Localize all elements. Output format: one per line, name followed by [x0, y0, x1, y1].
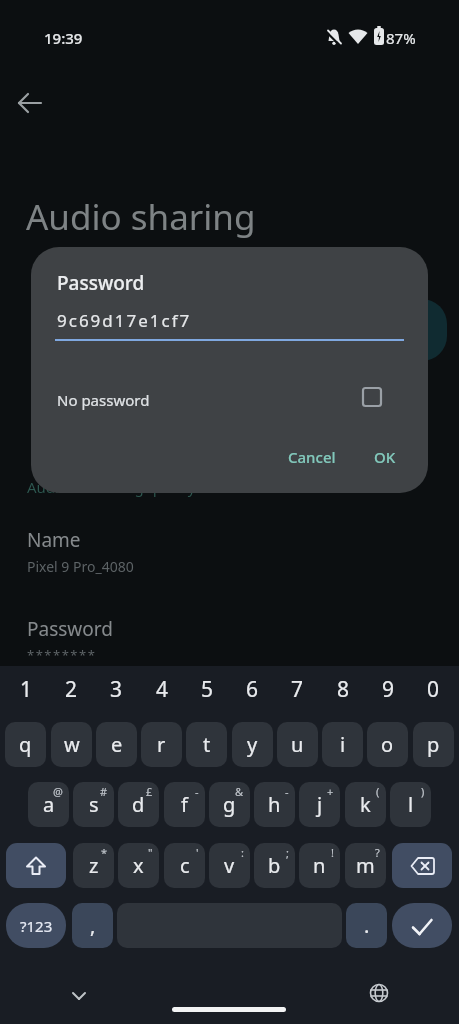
- staticText: +: [327, 784, 334, 799]
- staticText: k: [360, 791, 371, 818]
- button[interactable]: OK: [363, 441, 407, 473]
- button[interactable]: 5: [188, 672, 226, 706]
- button[interactable]: s: [73, 782, 114, 827]
- button[interactable]: g: [209, 782, 250, 827]
- staticText: 3: [110, 675, 123, 704]
- staticText: e: [111, 731, 123, 758]
- button[interactable]: .: [346, 903, 387, 948]
- staticText: Cancel: [288, 447, 336, 467]
- button[interactable]: o: [367, 722, 408, 767]
- staticText: h: [268, 791, 281, 818]
- staticText: Name: [27, 527, 81, 553]
- button[interactable]: 3: [97, 672, 135, 706]
- button[interactable]: p: [413, 722, 454, 767]
- staticText: 87%: [386, 28, 416, 48]
- staticText: o: [381, 731, 394, 758]
- button[interactable]: 4: [143, 672, 181, 706]
- staticText: 8: [337, 675, 350, 704]
- button[interactable]: 1: [7, 672, 45, 706]
- button[interactable]: [392, 903, 452, 948]
- button[interactable]: Cancel: [272, 441, 352, 473]
- button[interactable]: a: [28, 782, 69, 827]
- button[interactable]: v: [209, 843, 250, 888]
- button[interactable]: m: [345, 843, 386, 888]
- button[interactable]: x: [118, 843, 159, 888]
- button[interactable]: i: [322, 722, 363, 767]
- staticText: m: [356, 852, 375, 879]
- button[interactable]: 7: [278, 672, 316, 706]
- staticText: n: [313, 852, 326, 879]
- button[interactable]: 2: [52, 672, 90, 706]
- staticText: Pixel 9 Pro_4080: [27, 557, 134, 576]
- button[interactable]: r: [141, 722, 182, 767]
- button[interactable]: [364, 978, 394, 1008]
- button[interactable]: [64, 980, 94, 1010]
- button[interactable]: z: [73, 843, 114, 888]
- staticText: 5: [201, 675, 214, 704]
- button[interactable]: d: [118, 782, 159, 827]
- staticText: Audio streaming quality: [27, 477, 196, 497]
- staticText: c: [180, 852, 190, 879]
- staticText: No password: [57, 390, 150, 410]
- staticText: g: [223, 791, 236, 818]
- staticText: #: [100, 784, 108, 799]
- staticText: l: [408, 791, 414, 818]
- staticText: r: [157, 731, 166, 758]
- staticText: p: [427, 731, 440, 758]
- staticText: w: [64, 731, 80, 758]
- staticText: 2: [65, 675, 78, 704]
- staticText: q: [19, 731, 32, 758]
- staticText: j: [317, 791, 323, 818]
- button[interactable]: e: [96, 722, 137, 767]
- button[interactable]: h: [254, 782, 295, 827]
- staticText: ;: [286, 845, 289, 860]
- button[interactable]: y: [232, 722, 273, 767]
- button[interactable]: c: [164, 843, 205, 888]
- staticText: 4: [156, 675, 169, 704]
- staticText: i: [340, 731, 346, 758]
- staticText: 6: [246, 675, 259, 704]
- staticText: -: [195, 784, 199, 799]
- staticText: t: [203, 731, 211, 758]
- button[interactable]: b: [254, 843, 295, 888]
- staticText: *: [101, 845, 108, 860]
- staticText: f: [181, 791, 188, 818]
- staticText: ?123: [20, 916, 53, 936]
- button[interactable]: n: [299, 843, 340, 888]
- button[interactable]: ,: [72, 903, 113, 948]
- staticText: 1: [20, 675, 33, 704]
- staticText: &: [235, 784, 244, 799]
- staticText: ,: [90, 912, 96, 939]
- staticText: ): [421, 784, 425, 799]
- staticText: .: [364, 912, 370, 939]
- button[interactable]: [392, 843, 452, 888]
- button[interactable]: f: [164, 782, 205, 827]
- button[interactable]: [6, 843, 66, 888]
- staticText: s: [89, 791, 99, 818]
- staticText: a: [43, 791, 55, 818]
- button[interactable]: 0: [414, 672, 452, 706]
- button[interactable]: 9: [369, 672, 407, 706]
- staticText: £: [146, 784, 153, 799]
- button[interactable]: q: [5, 722, 46, 767]
- button[interactable]: [359, 384, 385, 410]
- staticText: x: [133, 852, 144, 879]
- button[interactable]: u: [277, 722, 318, 767]
- staticText: 7: [291, 675, 304, 704]
- button[interactable]: t: [186, 722, 227, 767]
- button[interactable]: 6: [233, 672, 271, 706]
- button[interactable]: k: [345, 782, 386, 827]
- staticText: ': [196, 845, 199, 860]
- staticText: OK: [374, 447, 396, 467]
- button[interactable]: 8: [324, 672, 362, 706]
- button[interactable]: [14, 87, 46, 119]
- staticText: u: [291, 731, 304, 758]
- button[interactable]: ?123: [6, 903, 66, 948]
- staticText: ********: [27, 646, 97, 664]
- button[interactable]: w: [51, 722, 92, 767]
- staticText: d: [132, 791, 145, 818]
- button[interactable]: l: [390, 782, 431, 827]
- button[interactable]: j: [299, 782, 340, 827]
- staticText: ?: [375, 845, 380, 860]
